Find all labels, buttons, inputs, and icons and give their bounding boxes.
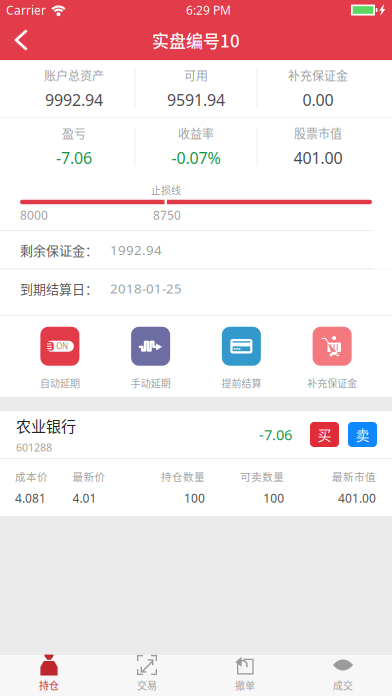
staticText: 到期结算日： xyxy=(20,279,98,298)
button[interactable]: 撤单 xyxy=(196,654,294,696)
staticText: 最新价 xyxy=(72,469,105,484)
staticText: 交易 xyxy=(137,678,157,692)
staticText: 9591.94 xyxy=(167,89,225,110)
staticText: 100 xyxy=(263,490,284,506)
staticText: 2018-01-25 xyxy=(110,279,182,297)
staticText: 0.00 xyxy=(302,89,333,110)
staticText: 盈亏 xyxy=(62,125,86,142)
staticText: 股票市值 xyxy=(294,125,342,142)
staticText: 卖 xyxy=(355,424,369,445)
staticText: 8750 xyxy=(153,207,181,223)
button[interactable]: Back xyxy=(0,20,44,60)
staticText: 1992.94 xyxy=(110,241,162,259)
staticText: 账户总资产 xyxy=(44,67,104,84)
staticText: 401.00 xyxy=(293,147,342,168)
staticText: 成交 xyxy=(333,678,353,692)
staticText: 9992.94 xyxy=(45,89,103,110)
button[interactable]: 手动延期 xyxy=(105,316,196,397)
button[interactable]: 补充保证金 xyxy=(287,316,378,397)
staticText: 401.00 xyxy=(338,490,376,506)
staticText: ON xyxy=(56,341,68,351)
staticText: -0.07% xyxy=(171,147,220,168)
staticText: -7.06 xyxy=(56,147,92,168)
staticText: 100 xyxy=(184,490,205,506)
button[interactable]: 交易 xyxy=(98,654,196,696)
button[interactable]: 提前结算 xyxy=(196,316,287,397)
button[interactable]: ON xyxy=(14,316,105,397)
staticText: 8000 xyxy=(20,207,48,223)
staticText: 持仓数量 xyxy=(161,469,205,484)
staticText: 601288 xyxy=(16,440,52,454)
staticText: 补充保证金 xyxy=(307,376,357,390)
staticText: 收益率 xyxy=(178,125,214,142)
staticText: 最新市值 xyxy=(332,469,376,484)
staticText: 补充保证金 xyxy=(288,67,348,84)
staticText: 买 xyxy=(317,424,331,445)
staticText: 农业银行 xyxy=(16,415,76,436)
staticText: 6:29 PM xyxy=(186,2,231,18)
button[interactable]: 持仓 xyxy=(0,654,98,696)
button[interactable]: 买 xyxy=(310,422,339,447)
staticText: 4.081 xyxy=(15,490,46,506)
staticText: 提前结算 xyxy=(221,376,261,390)
staticText: 自动延期 xyxy=(40,376,80,390)
button[interactable]: 卖 xyxy=(348,422,377,447)
staticText: Carrier xyxy=(6,2,46,18)
staticText: 持仓 xyxy=(39,678,59,692)
staticText: 成本价 xyxy=(15,469,48,484)
staticText: 实盘编号10 xyxy=(152,28,240,52)
staticText: 可卖数量 xyxy=(240,469,284,484)
staticText: -7.06 xyxy=(259,425,292,444)
staticText: 手动延期 xyxy=(131,376,171,390)
staticText: 4.01 xyxy=(72,490,96,506)
button[interactable]: 成交 xyxy=(294,654,392,696)
staticText: 剩余保证金： xyxy=(20,240,98,259)
staticText: 止损线 xyxy=(151,183,181,197)
staticText: 撤单 xyxy=(235,678,255,692)
staticText: 可用 xyxy=(184,67,208,84)
